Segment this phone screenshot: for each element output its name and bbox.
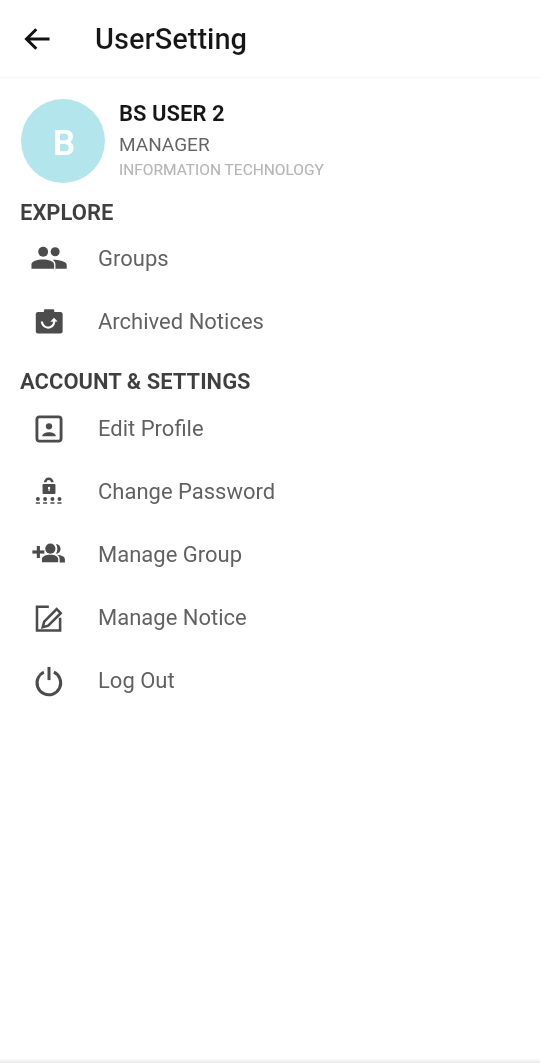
button[interactable]: B bbox=[0, 79, 540, 195]
staticText: UserSetting bbox=[95, 22, 248, 56]
button[interactable]: Edit Profile bbox=[0, 397, 540, 460]
button[interactable]: Log Out bbox=[0, 649, 540, 712]
staticText: MANAGER bbox=[119, 133, 210, 155]
button[interactable]: Manage Group bbox=[0, 523, 540, 586]
button[interactable]: Manage Notice bbox=[0, 586, 540, 649]
staticText: Edit Profile bbox=[98, 416, 204, 442]
staticText: ACCOUNT & SETTINGS bbox=[20, 369, 251, 395]
staticText: INFORMATION TECHNOLOGY bbox=[119, 161, 324, 179]
staticText: B bbox=[53, 123, 76, 164]
staticText: Manage Group bbox=[98, 542, 243, 568]
button[interactable]: Back bbox=[13, 14, 63, 64]
staticText: Change Password bbox=[98, 479, 276, 505]
button[interactable]: Archived Notices bbox=[0, 290, 540, 353]
button[interactable]: Change Password bbox=[0, 460, 540, 523]
staticText: Manage Notice bbox=[98, 605, 247, 631]
button[interactable]: Groups bbox=[0, 227, 540, 290]
staticText: Archived Notices bbox=[98, 309, 264, 335]
staticText: BS USER 2 bbox=[119, 101, 225, 127]
staticText: Log Out bbox=[98, 668, 175, 694]
staticText: EXPLORE bbox=[20, 200, 114, 226]
staticText: Groups bbox=[98, 246, 169, 272]
